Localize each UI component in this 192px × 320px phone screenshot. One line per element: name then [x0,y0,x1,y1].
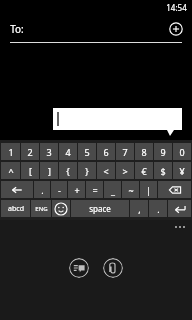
staticText: ] [48,165,51,177]
button[interactable]: 4 [59,143,77,160]
staticText: ^ [8,165,14,177]
staticText: ~ [128,184,134,196]
staticText: | [146,184,151,196]
button[interactable]: 9 [154,143,172,160]
button[interactable]: ] [40,162,58,179]
staticText: ¥ [179,165,185,177]
staticText: 9 [160,146,166,158]
button[interactable]: Add recipient [169,22,183,36]
staticText: > [122,165,128,177]
button[interactable]: Shift back [1,181,33,198]
button[interactable]: ~ [122,181,139,198]
button[interactable]: 2 [21,143,39,160]
button[interactable]: < [97,162,115,179]
button[interactable]: 8 [135,143,153,160]
staticText: € [141,165,147,177]
button[interactable]: } [78,162,96,179]
staticText: = [92,184,98,196]
button[interactable]: 3 [40,143,58,160]
button[interactable]: . [149,200,167,217]
staticText: { [66,165,70,177]
button[interactable]: { [59,162,77,179]
button[interactable]: abcd [1,200,30,217]
staticText: - [58,184,61,196]
button[interactable]: - [51,181,67,198]
button[interactable]: Enter [168,200,191,217]
staticText: space [89,203,111,214]
staticText: } [85,165,89,177]
staticText: 0 [179,146,185,158]
button[interactable]: To: [0,15,192,43]
staticText: 1 [8,146,14,158]
staticText: 6 [103,146,109,158]
staticText: + [74,184,80,196]
staticText: _ [111,184,115,196]
staticText: . [41,184,44,196]
staticText: abcd [8,204,24,214]
button[interactable]: ¥ [173,162,191,179]
button[interactable]: , [130,200,148,217]
button[interactable]: Emoji [52,200,70,217]
staticText: 5 [84,146,90,158]
button[interactable]: _ [104,181,121,198]
staticText: 14:54 [166,2,187,13]
button[interactable]: [ [21,162,39,179]
button[interactable]: $ [154,162,172,179]
button[interactable]: > [116,162,134,179]
button[interactable]: + [68,181,85,198]
button[interactable]: space [71,200,129,217]
staticText: [ [29,165,32,177]
staticText: $ [160,165,166,177]
button[interactable]: ^ [1,162,20,179]
button[interactable]: . [34,181,50,198]
button[interactable]: Backspace [158,181,191,198]
button[interactable]: 1 [1,143,20,160]
button[interactable]: Send [69,258,89,278]
button[interactable]: Attach [103,258,123,278]
staticText: . [157,203,160,215]
button[interactable]: 0 [173,143,191,160]
button[interactable]: ENG [31,200,51,217]
button[interactable]: = [86,181,103,198]
button[interactable]: 5 [78,143,96,160]
staticText: < [103,165,109,177]
button[interactable]: € [135,162,153,179]
staticText: 7 [122,146,128,158]
staticText: 8 [141,146,147,158]
button[interactable]: 6 [97,143,115,160]
staticText: ENG [35,205,48,213]
button[interactable]: | [140,181,157,198]
staticText: , [138,203,141,215]
staticText: 3 [46,146,52,158]
staticText: 4 [65,146,71,158]
staticText: 2 [27,146,33,158]
staticText: To: [10,22,24,36]
button[interactable]: 7 [116,143,134,160]
